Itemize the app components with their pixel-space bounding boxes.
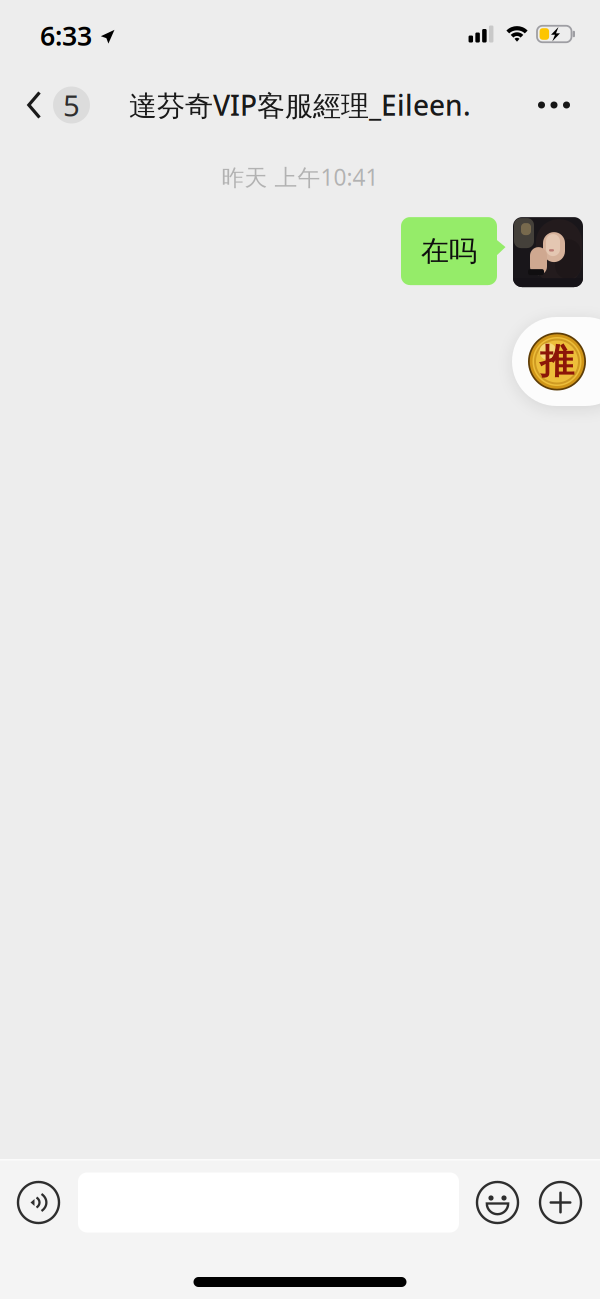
button[interactable]: More options	[529, 1160, 600, 1244]
button[interactable]: Voice message	[0, 1160, 78, 1244]
staticText: 5	[63, 85, 80, 124]
button[interactable]: Emoji	[459, 1160, 529, 1244]
staticText: 達芬奇VIP客服經理_Eileen.	[129, 86, 471, 124]
button[interactable]: Promotion	[512, 317, 600, 406]
staticText: 推	[539, 340, 574, 383]
button[interactable]: More	[524, 62, 600, 148]
staticText: 在吗	[421, 234, 477, 268]
staticText: 6:33	[40, 18, 92, 53]
staticText: 昨天 上午10:41	[221, 162, 378, 192]
button[interactable]: Back	[0, 62, 104, 148]
